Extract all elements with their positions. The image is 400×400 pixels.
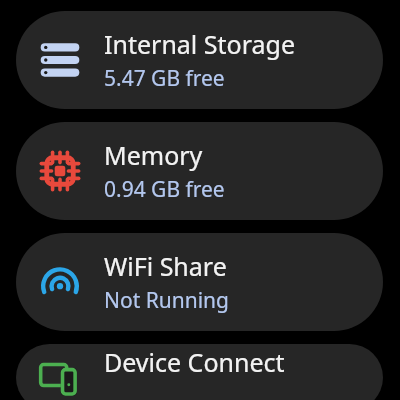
staticText: WiFi Share [104,249,227,283]
button[interactable]: Internal Storage [16,11,383,109]
other: Device Connect [16,344,383,400]
staticText: Memory [104,138,203,172]
staticText: 0.94 GB free [104,175,225,204]
other: Internal Storage [16,11,383,109]
staticText: Internal Storage [104,27,296,61]
button[interactable]: Device Connect [16,344,383,400]
other: Memory [16,122,383,220]
staticText: Not Running [104,286,230,315]
staticText: 5.47 GB free [104,64,225,93]
button[interactable]: Memory [16,122,383,220]
other: WiFi Share [16,233,383,331]
button[interactable]: WiFi Share [16,233,383,331]
staticText: Device Connect [104,345,285,379]
